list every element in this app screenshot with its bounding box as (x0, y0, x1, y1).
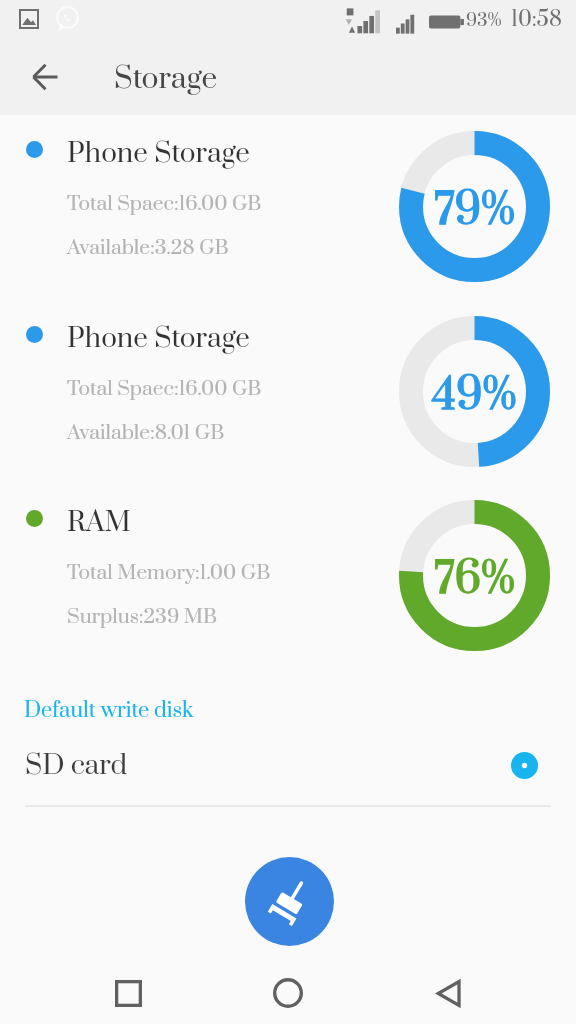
staticText: 76% (434, 552, 516, 608)
staticText: Available:8.01 GB (67, 420, 225, 446)
button[interactable]: Phone Storage (0, 299, 576, 483)
button[interactable]: Clean (245, 857, 334, 946)
button[interactable]: RAM (0, 483, 576, 667)
button[interactable]: Home (258, 963, 318, 1023)
staticText: Total Spaec:16.00 GB (67, 376, 262, 402)
staticText: Phone Storage (67, 321, 250, 356)
staticText: Surplus:239 MB (67, 604, 218, 630)
button[interactable]: Recent apps (98, 963, 158, 1023)
button[interactable]: Back (19, 51, 71, 103)
staticText: 79% (434, 183, 516, 239)
staticText: Available:3.28 GB (67, 235, 229, 261)
staticText: SD card (25, 748, 128, 783)
staticText: RAM (67, 505, 131, 540)
button[interactable]: Back (418, 963, 478, 1023)
staticText: Total Memory:1.00 GB (67, 560, 271, 586)
button[interactable]: Phone Storage (0, 114, 576, 298)
staticText: 10:58 (511, 6, 562, 33)
staticText: 93% (466, 9, 502, 32)
staticText: Storage (114, 60, 218, 98)
staticText: Default write disk (24, 697, 194, 724)
button[interactable]: SD card (0, 737, 576, 793)
staticText: Phone Storage (67, 136, 250, 171)
staticText: Total Spaec:16.00 GB (67, 191, 262, 217)
staticText: 49% (432, 368, 517, 424)
